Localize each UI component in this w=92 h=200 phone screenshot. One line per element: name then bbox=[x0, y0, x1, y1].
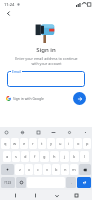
button[interactable]: f bbox=[30, 151, 39, 162]
staticText: . bbox=[71, 180, 72, 185]
button[interactable]: Emoji bbox=[16, 177, 26, 188]
staticText: l bbox=[84, 154, 86, 159]
button[interactable]: Keyboard tool 4 bbox=[50, 129, 57, 136]
staticText: a bbox=[6, 154, 9, 159]
staticText: f bbox=[34, 154, 36, 159]
staticText: c bbox=[37, 167, 39, 172]
button[interactable]: Hide keyboard bbox=[52, 191, 61, 200]
button[interactable]: Next bbox=[73, 92, 86, 105]
button[interactable]: k bbox=[70, 151, 79, 162]
button[interactable]: Keyboard tool 6 bbox=[82, 129, 89, 136]
staticText: i bbox=[68, 141, 70, 146]
button[interactable]: j bbox=[60, 151, 69, 162]
button[interactable]: Home bbox=[31, 191, 40, 200]
button[interactable]: o bbox=[74, 138, 82, 149]
button[interactable]: Shift bbox=[1, 164, 14, 175]
staticText: e bbox=[23, 141, 26, 146]
staticText: 11:24 bbox=[4, 2, 15, 7]
staticText: g bbox=[43, 154, 46, 159]
button[interactable]: w bbox=[11, 138, 19, 149]
staticText: u bbox=[59, 141, 62, 146]
staticText: o bbox=[77, 141, 80, 146]
staticText: m bbox=[72, 167, 76, 172]
button[interactable]: Back bbox=[11, 191, 20, 200]
button[interactable] bbox=[7, 71, 85, 87]
button[interactable]: Sign in with Google bbox=[6, 96, 44, 101]
staticText: h bbox=[53, 154, 56, 159]
staticText: Enter your email address to continue wit… bbox=[15, 56, 78, 66]
button[interactable]: Recents bbox=[72, 191, 81, 200]
button[interactable]: p bbox=[83, 138, 91, 149]
staticText: q bbox=[4, 141, 7, 146]
staticText: Sign in bbox=[36, 46, 56, 54]
button[interactable]: v bbox=[43, 164, 51, 175]
staticText: s bbox=[15, 154, 17, 159]
button[interactable]: n bbox=[61, 164, 69, 175]
staticText: t bbox=[41, 141, 43, 146]
button[interactable]: u bbox=[56, 138, 64, 149]
button[interactable]: a bbox=[3, 151, 11, 162]
staticText: Email bbox=[12, 69, 21, 74]
staticText: b bbox=[55, 167, 58, 172]
button[interactable]: r bbox=[29, 138, 37, 149]
staticText: k bbox=[73, 154, 76, 159]
button[interactable]: Backspace bbox=[79, 164, 91, 175]
button[interactable]: Keyboard tool 3 bbox=[35, 129, 42, 136]
button[interactable]: i bbox=[65, 138, 73, 149]
button[interactable]: c bbox=[34, 164, 42, 175]
button[interactable]: y bbox=[47, 138, 55, 149]
staticText: j bbox=[64, 154, 66, 159]
button[interactable]: t bbox=[38, 138, 46, 149]
staticText: ?123 bbox=[4, 180, 12, 185]
staticText: p bbox=[86, 141, 89, 146]
button[interactable]: g bbox=[40, 151, 49, 162]
button[interactable]: Keyboard tool 1 bbox=[3, 129, 10, 136]
staticText: d bbox=[24, 154, 27, 159]
button[interactable]: e bbox=[20, 138, 28, 149]
staticText: v bbox=[46, 167, 49, 172]
button[interactable]: s bbox=[12, 151, 20, 162]
button[interactable]: x bbox=[25, 164, 33, 175]
staticText: x bbox=[28, 167, 31, 172]
button[interactable]: l bbox=[80, 151, 89, 162]
button[interactable]: Back bbox=[3, 8, 13, 18]
button[interactable]: Keyboard tool 2 bbox=[19, 129, 26, 136]
button[interactable]: z bbox=[15, 164, 24, 175]
button[interactable]: b bbox=[52, 164, 60, 175]
button[interactable]: h bbox=[50, 151, 59, 162]
staticText: Sign in with Google bbox=[13, 96, 44, 101]
staticText: z bbox=[19, 167, 21, 172]
staticText: n bbox=[64, 167, 67, 172]
button[interactable]: q bbox=[1, 138, 10, 149]
staticText: w bbox=[13, 141, 17, 146]
staticText: y bbox=[50, 141, 53, 146]
button[interactable]: Keyboard tool 5 bbox=[66, 129, 73, 136]
button[interactable]: d bbox=[21, 151, 29, 162]
button[interactable]: m bbox=[70, 164, 78, 175]
button[interactable]: ?123 bbox=[1, 177, 15, 188]
button[interactable]: Enter bbox=[77, 177, 91, 188]
staticText: r bbox=[32, 141, 34, 146]
